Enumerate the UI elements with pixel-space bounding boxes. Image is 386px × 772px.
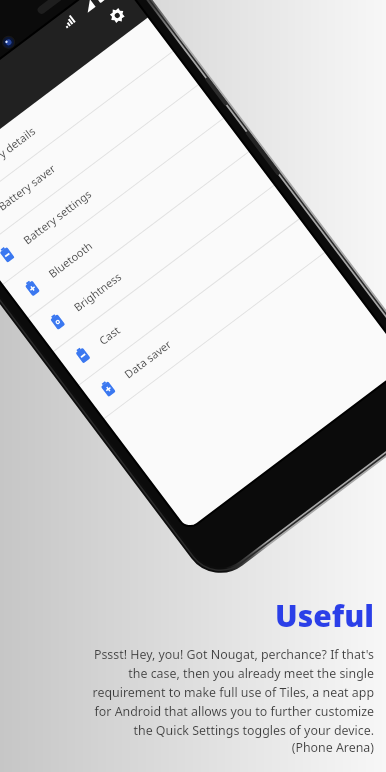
staticText: Pssst! Hey, you! Got Nougat, perchance? … — [74, 646, 374, 739]
staticText: (Phone Arena) — [74, 739, 374, 756]
other: Tiles app screenshot on phone — [0, 0, 386, 772]
staticText: Useful — [74, 595, 374, 636]
